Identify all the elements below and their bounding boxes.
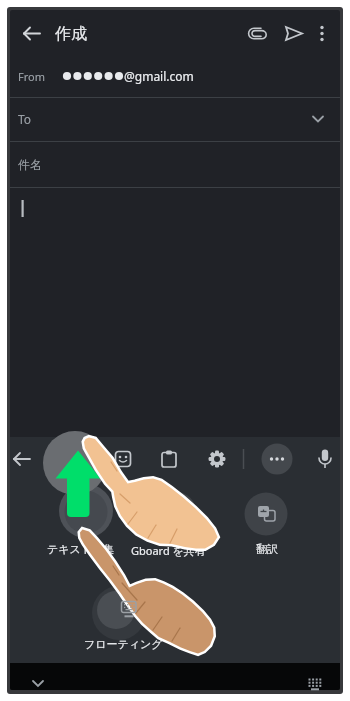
- staticText: @gmail.com: [124, 68, 194, 84]
- button[interactable]: [10, 142, 340, 187]
- button[interactable]: [10, 188, 340, 437]
- button[interactable]: [244, 491, 288, 535]
- button[interactable]: [106, 442, 140, 476]
- staticText: To: [18, 111, 32, 127]
- button[interactable]: [152, 442, 186, 476]
- button[interactable]: [12, 442, 46, 476]
- button[interactable]: [153, 491, 197, 535]
- button[interactable]: [200, 442, 234, 476]
- button[interactable]: [22, 668, 54, 690]
- button[interactable]: [308, 442, 340, 476]
- staticText: 翻訳: [256, 542, 278, 556]
- button[interactable]: [238, 14, 276, 52]
- button[interactable]: [274, 14, 312, 52]
- button[interactable]: [300, 668, 332, 690]
- staticText: 件名: [18, 157, 42, 172]
- staticText: From: [18, 69, 45, 84]
- button[interactable]: [63, 491, 107, 535]
- button[interactable]: [10, 98, 340, 141]
- staticText: 作成: [55, 24, 87, 44]
- staticText: テキスト編集: [47, 542, 115, 556]
- button[interactable]: [308, 14, 336, 52]
- button[interactable]: [261, 442, 293, 474]
- staticText: Gboard を共有: [131, 543, 206, 558]
- button[interactable]: [12, 14, 50, 52]
- staticText: フローティング: [84, 637, 163, 651]
- button[interactable]: [10, 58, 340, 97]
- button[interactable]: [103, 589, 147, 633]
